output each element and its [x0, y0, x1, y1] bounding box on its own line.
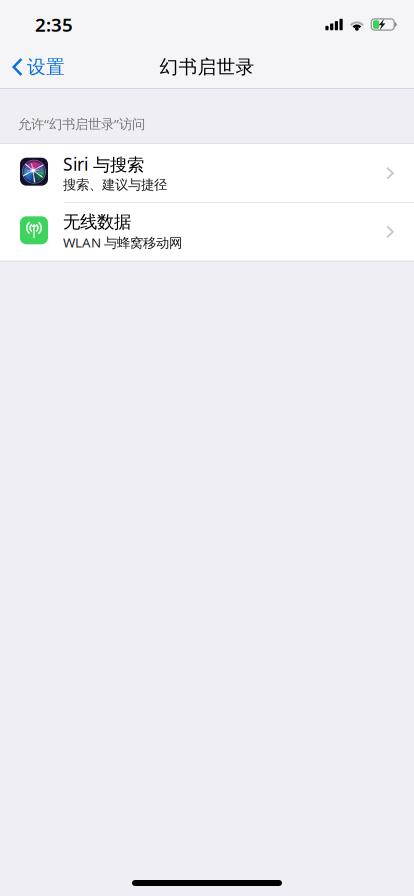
staticText: Siri 与搜索 — [63, 152, 144, 176]
staticText: WLAN 与蜂窝移动网 — [63, 234, 182, 251]
staticText: 允许“幻书启世录”访问 — [18, 115, 145, 133]
button[interactable]: 设置 — [0, 46, 77, 88]
staticText: 2:35 — [35, 12, 73, 37]
button[interactable]: 无线数据 — [0, 203, 414, 261]
staticText: 无线数据 — [63, 211, 131, 233]
staticText: 幻书启世录 — [159, 55, 254, 78]
staticText: 设置 — [27, 55, 65, 78]
button[interactable]: Siri 与搜索 — [0, 144, 414, 202]
staticText: 搜索、建议与捷径 — [63, 177, 167, 193]
